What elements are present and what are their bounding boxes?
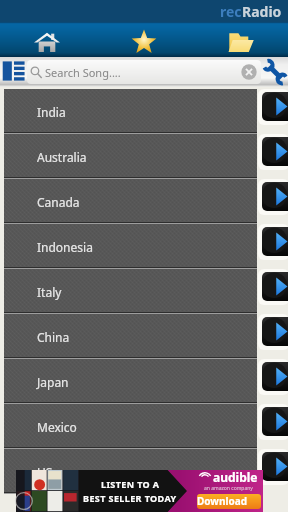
staticText: Japan — [37, 374, 69, 390]
staticText: India — [37, 104, 66, 120]
button[interactable]: China — [4, 314, 257, 359]
staticText: US — [37, 464, 53, 480]
button[interactable]: Play — [262, 272, 288, 301]
button[interactable]: Play — [262, 317, 288, 346]
staticText: an amazon company — [204, 485, 253, 492]
staticText: Download App — [197, 494, 261, 509]
staticText: audible — [213, 469, 258, 485]
button[interactable]: Italy — [4, 269, 257, 314]
staticText: LISTEN TO A — [101, 478, 160, 490]
button[interactable]: Play — [262, 137, 288, 166]
button[interactable]: Japan — [4, 359, 257, 404]
button[interactable]: Play — [262, 362, 288, 391]
button[interactable]: Download App — [197, 494, 261, 509]
staticText: Canada — [37, 194, 80, 210]
staticText: rec — [220, 2, 242, 21]
button[interactable]: Settings — [261, 58, 288, 85]
staticText: Indonesia — [37, 239, 93, 255]
button[interactable]: Favorites — [131, 29, 157, 55]
staticText: Australia — [37, 149, 87, 165]
button[interactable]: Play — [262, 227, 288, 256]
button[interactable]: LISTEN TO A — [16, 470, 263, 512]
button[interactable]: Play — [262, 407, 288, 436]
button[interactable]: Play — [262, 92, 288, 121]
staticText: Mexico — [37, 419, 77, 435]
button[interactable]: Recordings — [228, 29, 254, 55]
button[interactable]: List view — [2, 59, 26, 83]
button[interactable]: Mexico — [4, 404, 257, 449]
button[interactable]: Canada — [4, 179, 257, 224]
staticText: BEST SELLER TODAY — [83, 492, 177, 504]
button[interactable]: Play — [262, 452, 288, 481]
button[interactable]: Play — [262, 182, 288, 211]
button[interactable]: Australia — [4, 134, 257, 179]
staticText: Italy — [37, 284, 62, 300]
button[interactable]: Indonesia — [4, 224, 257, 269]
staticText: China — [37, 329, 70, 345]
button[interactable]: Home — [34, 29, 60, 55]
button[interactable]: Search Song.... — [27, 60, 261, 84]
button[interactable]: India — [4, 89, 257, 134]
staticText: Search Song.... — [45, 65, 121, 80]
staticText: Radio — [242, 2, 282, 21]
button[interactable]: US — [4, 449, 257, 494]
